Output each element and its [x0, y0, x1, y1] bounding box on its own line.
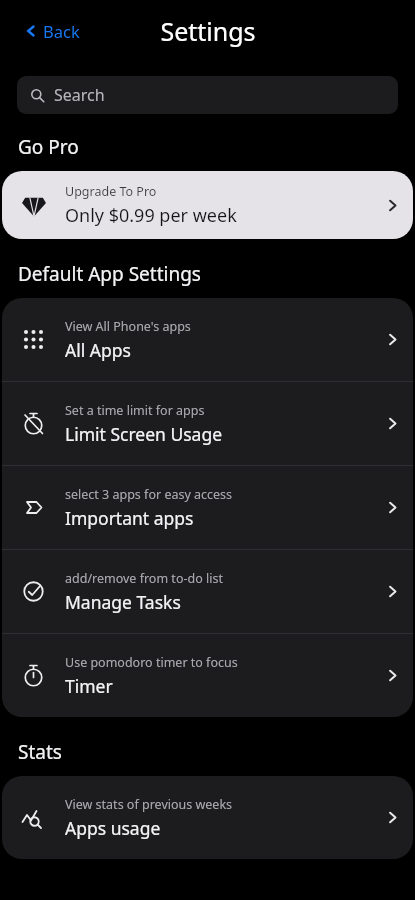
other: Timer	[371, 668, 413, 683]
button[interactable]: Back	[22, 16, 82, 46]
other: Manage Tasks	[371, 584, 413, 599]
staticText: Search	[54, 84, 105, 106]
button[interactable]: View stats of previous weeks	[2, 776, 413, 859]
staticText: Default App Settings	[18, 261, 201, 287]
button[interactable]: Search	[17, 76, 398, 114]
staticText: Upgrade To Pro	[65, 183, 157, 200]
other: Apps usage	[371, 810, 413, 825]
staticText: View All Phone's apps	[65, 318, 191, 335]
staticText: Important apps	[65, 506, 194, 530]
staticText: select 3 apps for easy access	[65, 486, 233, 503]
button[interactable]: Use pomodoro timer to focus	[2, 634, 413, 717]
other: All Apps	[371, 332, 413, 347]
staticText: Back	[43, 20, 80, 42]
button[interactable]: add/remove from to-do list	[2, 550, 413, 633]
staticText: add/remove from to-do list	[65, 570, 223, 587]
staticText: Set a time limit for apps	[65, 402, 205, 419]
button[interactable]: Set a time limit for apps	[2, 382, 413, 465]
staticText: Go Pro	[18, 134, 79, 160]
other: Important apps	[371, 500, 413, 515]
staticText: Manage Tasks	[65, 590, 181, 614]
staticText: Settings	[160, 14, 256, 48]
staticText: Timer	[65, 674, 113, 698]
other: Limit Screen Usage	[371, 416, 413, 431]
staticText: Apps usage	[65, 816, 161, 840]
staticText: Limit Screen Usage	[65, 422, 223, 446]
staticText: Only $0.99 per week	[65, 203, 237, 228]
staticText: All Apps	[65, 338, 131, 362]
staticText: View stats of previous weeks	[65, 796, 233, 813]
staticText: Use pomodoro timer to focus	[65, 654, 238, 671]
button[interactable]: Upgrade To Pro	[2, 171, 413, 239]
staticText: Stats	[18, 739, 62, 765]
button[interactable]: View All Phone's apps	[2, 298, 413, 381]
button[interactable]: select 3 apps for easy access	[2, 466, 413, 549]
